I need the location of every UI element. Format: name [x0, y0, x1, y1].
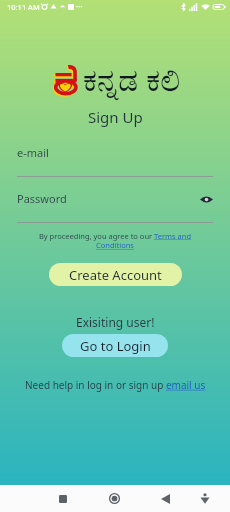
staticText: By proceeding, you agree to our Terms an…	[30, 231, 200, 251]
staticText: ···	[76, 1, 83, 12]
button[interactable]: Hide keyboard	[190, 485, 219, 512]
button[interactable]: Back	[151, 485, 180, 512]
staticText: Need help in log in or sign up email us	[25, 378, 206, 392]
button[interactable]: Create Account	[49, 263, 182, 286]
staticText: ಕನ್ನಡ ಕಲಿ	[83, 58, 180, 100]
staticText: Sign Up	[88, 107, 143, 127]
staticText: 10:11 AM	[7, 2, 40, 12]
staticText: Create Account	[69, 266, 162, 284]
button[interactable]: Recent apps	[48, 485, 77, 512]
staticText: Password	[17, 191, 67, 206]
button[interactable]: Home	[100, 485, 129, 512]
staticText: Exisiting user!	[76, 314, 155, 330]
button[interactable]: Show password	[199, 192, 213, 206]
staticText: e-mail	[17, 145, 49, 160]
staticText: Go to Login	[80, 337, 151, 355]
button[interactable]: Go to Login	[62, 334, 168, 357]
